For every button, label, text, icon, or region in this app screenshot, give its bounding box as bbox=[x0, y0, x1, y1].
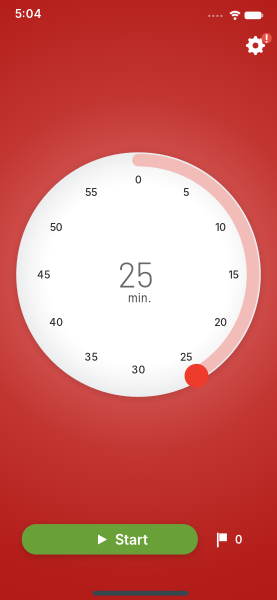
staticText: Start bbox=[115, 531, 148, 548]
staticText: 55 bbox=[85, 186, 97, 199]
staticText: 50 bbox=[50, 221, 63, 233]
staticText: 35 bbox=[84, 351, 97, 363]
staticText: 25 bbox=[180, 351, 192, 363]
staticText: 20 bbox=[214, 316, 227, 328]
staticText: 5 bbox=[183, 186, 189, 199]
staticText: 25 bbox=[118, 253, 154, 294]
staticText: 30 bbox=[131, 363, 145, 376]
staticText: 0 bbox=[235, 533, 242, 546]
staticText: 40 bbox=[49, 316, 63, 328]
staticText: 5:04 bbox=[15, 7, 42, 21]
staticText: 45 bbox=[37, 268, 50, 281]
staticText: 0 bbox=[135, 173, 142, 186]
staticText: 15 bbox=[228, 268, 238, 281]
staticText: 10 bbox=[215, 221, 226, 233]
staticText: min. bbox=[128, 291, 151, 305]
